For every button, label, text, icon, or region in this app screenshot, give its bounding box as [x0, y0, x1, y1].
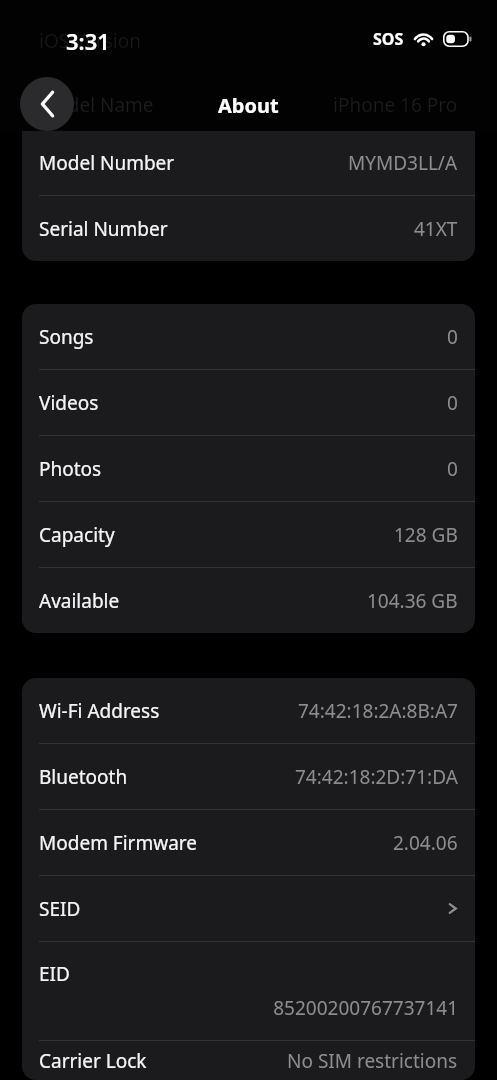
button[interactable]: Capacity: [22, 502, 475, 568]
staticText: 0: [447, 456, 458, 482]
staticText: 41XT: [414, 216, 458, 242]
staticText: Songs: [39, 324, 94, 350]
staticText: Bluetooth: [39, 764, 128, 790]
button[interactable]: Wi-Fi Address: [22, 678, 475, 744]
staticText: 104.36 GB: [367, 588, 458, 614]
button[interactable]: Songs: [22, 304, 475, 370]
staticText: 0: [447, 390, 458, 416]
staticText: Modem Firmware: [39, 830, 197, 856]
button[interactable]: Serial Number: [22, 196, 475, 261]
button[interactable]: SEID: [22, 876, 475, 942]
staticText: Serial Number: [39, 216, 168, 242]
staticText: MYMD3LL/A: [348, 150, 458, 176]
button[interactable]: Carrier Lock: [22, 1041, 475, 1080]
button[interactable]: Photos: [22, 436, 475, 502]
staticText: SEID: [39, 896, 81, 922]
staticText: iOS Version: [39, 28, 141, 54]
staticText: iPhone 16 Pro: [333, 92, 458, 118]
staticText: 2.04.06: [393, 830, 458, 856]
button[interactable]: Bluetooth: [22, 744, 475, 810]
staticText: 128 GB: [394, 522, 458, 548]
staticText: SOS: [373, 28, 404, 50]
staticText: Model Number: [39, 150, 175, 176]
staticText: Carrier Lock: [39, 1048, 147, 1074]
staticText: 74:42:18:2A:8B:A7: [298, 698, 458, 724]
staticText: 85200200767737141: [39, 995, 458, 1021]
staticText: Capacity: [39, 522, 115, 548]
button[interactable]: EID: [22, 942, 475, 1041]
staticText: Available: [39, 588, 120, 614]
staticText: 74:42:18:2D:71:DA: [295, 764, 458, 790]
staticText: Wi-Fi Address: [39, 698, 160, 724]
staticText: EID: [39, 961, 70, 987]
button[interactable]: Videos: [22, 370, 475, 436]
staticText: About: [218, 92, 279, 119]
staticText: 3:31: [66, 26, 110, 56]
staticText: Photos: [39, 456, 102, 482]
staticText: Model Name: [39, 92, 154, 118]
staticText: No SIM restrictions: [287, 1048, 458, 1074]
button[interactable]: Back: [20, 77, 74, 131]
staticText: 0: [447, 324, 458, 350]
button[interactable]: Available: [22, 568, 475, 633]
button[interactable]: Model Number: [22, 130, 475, 196]
button[interactable]: Modem Firmware: [22, 810, 475, 876]
staticText: Videos: [39, 390, 99, 416]
